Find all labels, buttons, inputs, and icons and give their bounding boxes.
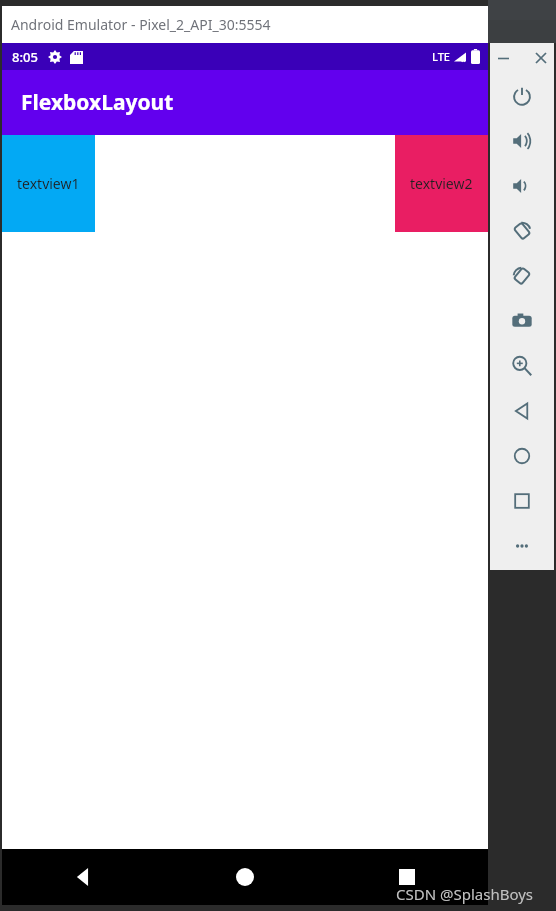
- button[interactable]: Home: [164, 849, 326, 905]
- button[interactable]: Back: [2, 849, 164, 905]
- button[interactable]: textview2: [395, 135, 488, 232]
- staticText: CSDN @SplashBoys: [396, 884, 534, 904]
- button[interactable]: Zoom: [490, 343, 554, 388]
- button[interactable]: Power: [490, 73, 554, 118]
- button[interactable]: Recent apps: [326, 849, 488, 905]
- staticText: FlexboxLayout: [21, 88, 174, 117]
- staticText: textview2: [410, 174, 473, 193]
- button[interactable]: Volume up: [490, 118, 554, 163]
- button[interactable]: textview1: [2, 135, 95, 232]
- button[interactable]: Home: [490, 433, 554, 478]
- button[interactable]: Overview: [490, 478, 554, 523]
- staticText: LTE: [432, 49, 450, 64]
- button[interactable]: Rotate right: [490, 253, 554, 298]
- staticText: textview1: [17, 174, 80, 193]
- staticText: 8:05: [12, 48, 38, 66]
- staticText: Android Emulator - Pixel_2_API_30:5554: [11, 15, 271, 34]
- button[interactable]: Minimize: [492, 47, 514, 69]
- button[interactable]: Close: [530, 47, 552, 69]
- button[interactable]: Screenshot: [490, 298, 554, 343]
- button[interactable]: Rotate left: [490, 208, 554, 253]
- button[interactable]: More: [490, 523, 554, 568]
- button[interactable]: Volume down: [490, 163, 554, 208]
- button[interactable]: Back: [490, 388, 554, 433]
